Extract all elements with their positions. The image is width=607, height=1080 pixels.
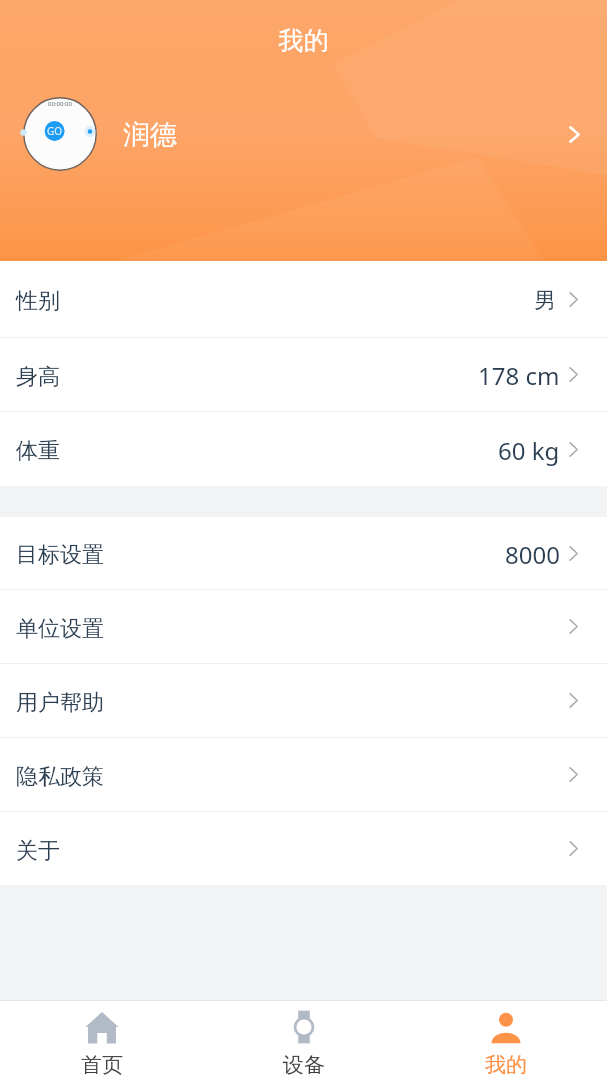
button[interactable]: 体重 <box>0 412 607 486</box>
staticText: 目标设置 <box>16 541 104 569</box>
staticText: 我的 <box>485 1052 527 1078</box>
staticText: 我的 <box>0 25 607 56</box>
button[interactable]: 性别 <box>0 261 607 337</box>
staticText: 178 cm <box>478 359 560 392</box>
button[interactable]: Profile details <box>557 117 591 151</box>
staticText: 身高 <box>16 363 60 391</box>
staticText: 60 kg <box>498 434 560 467</box>
staticText: 8000 <box>505 538 560 571</box>
staticText: 单位设置 <box>16 615 104 643</box>
staticText: 体重 <box>16 437 60 465</box>
staticText: GO <box>47 124 63 138</box>
button[interactable]: 我的 <box>405 1001 607 1080</box>
button[interactable]: 隐私政策 <box>0 738 607 811</box>
staticText: 设备 <box>283 1052 325 1078</box>
button[interactable]: 设备 <box>203 1001 405 1080</box>
staticText: 润德 <box>123 118 177 152</box>
staticText: 关于 <box>16 837 60 865</box>
button[interactable]: 目标设置 <box>0 517 607 589</box>
staticText: 隐私政策 <box>16 763 104 791</box>
button[interactable]: 身高 <box>0 338 607 411</box>
staticText: 首页 <box>81 1052 123 1078</box>
staticText: 用户帮助 <box>16 689 104 717</box>
button[interactable]: 单位设置 <box>0 590 607 663</box>
staticText: 性别 <box>16 287 60 315</box>
staticText: 男 <box>534 287 556 315</box>
button[interactable]: 首页 <box>0 1001 203 1080</box>
button[interactable]: 关于 <box>0 812 607 885</box>
button[interactable]: 00:00:00 <box>0 84 607 184</box>
button[interactable]: 用户帮助 <box>0 664 607 737</box>
staticText: 00:00:00 <box>48 100 72 108</box>
